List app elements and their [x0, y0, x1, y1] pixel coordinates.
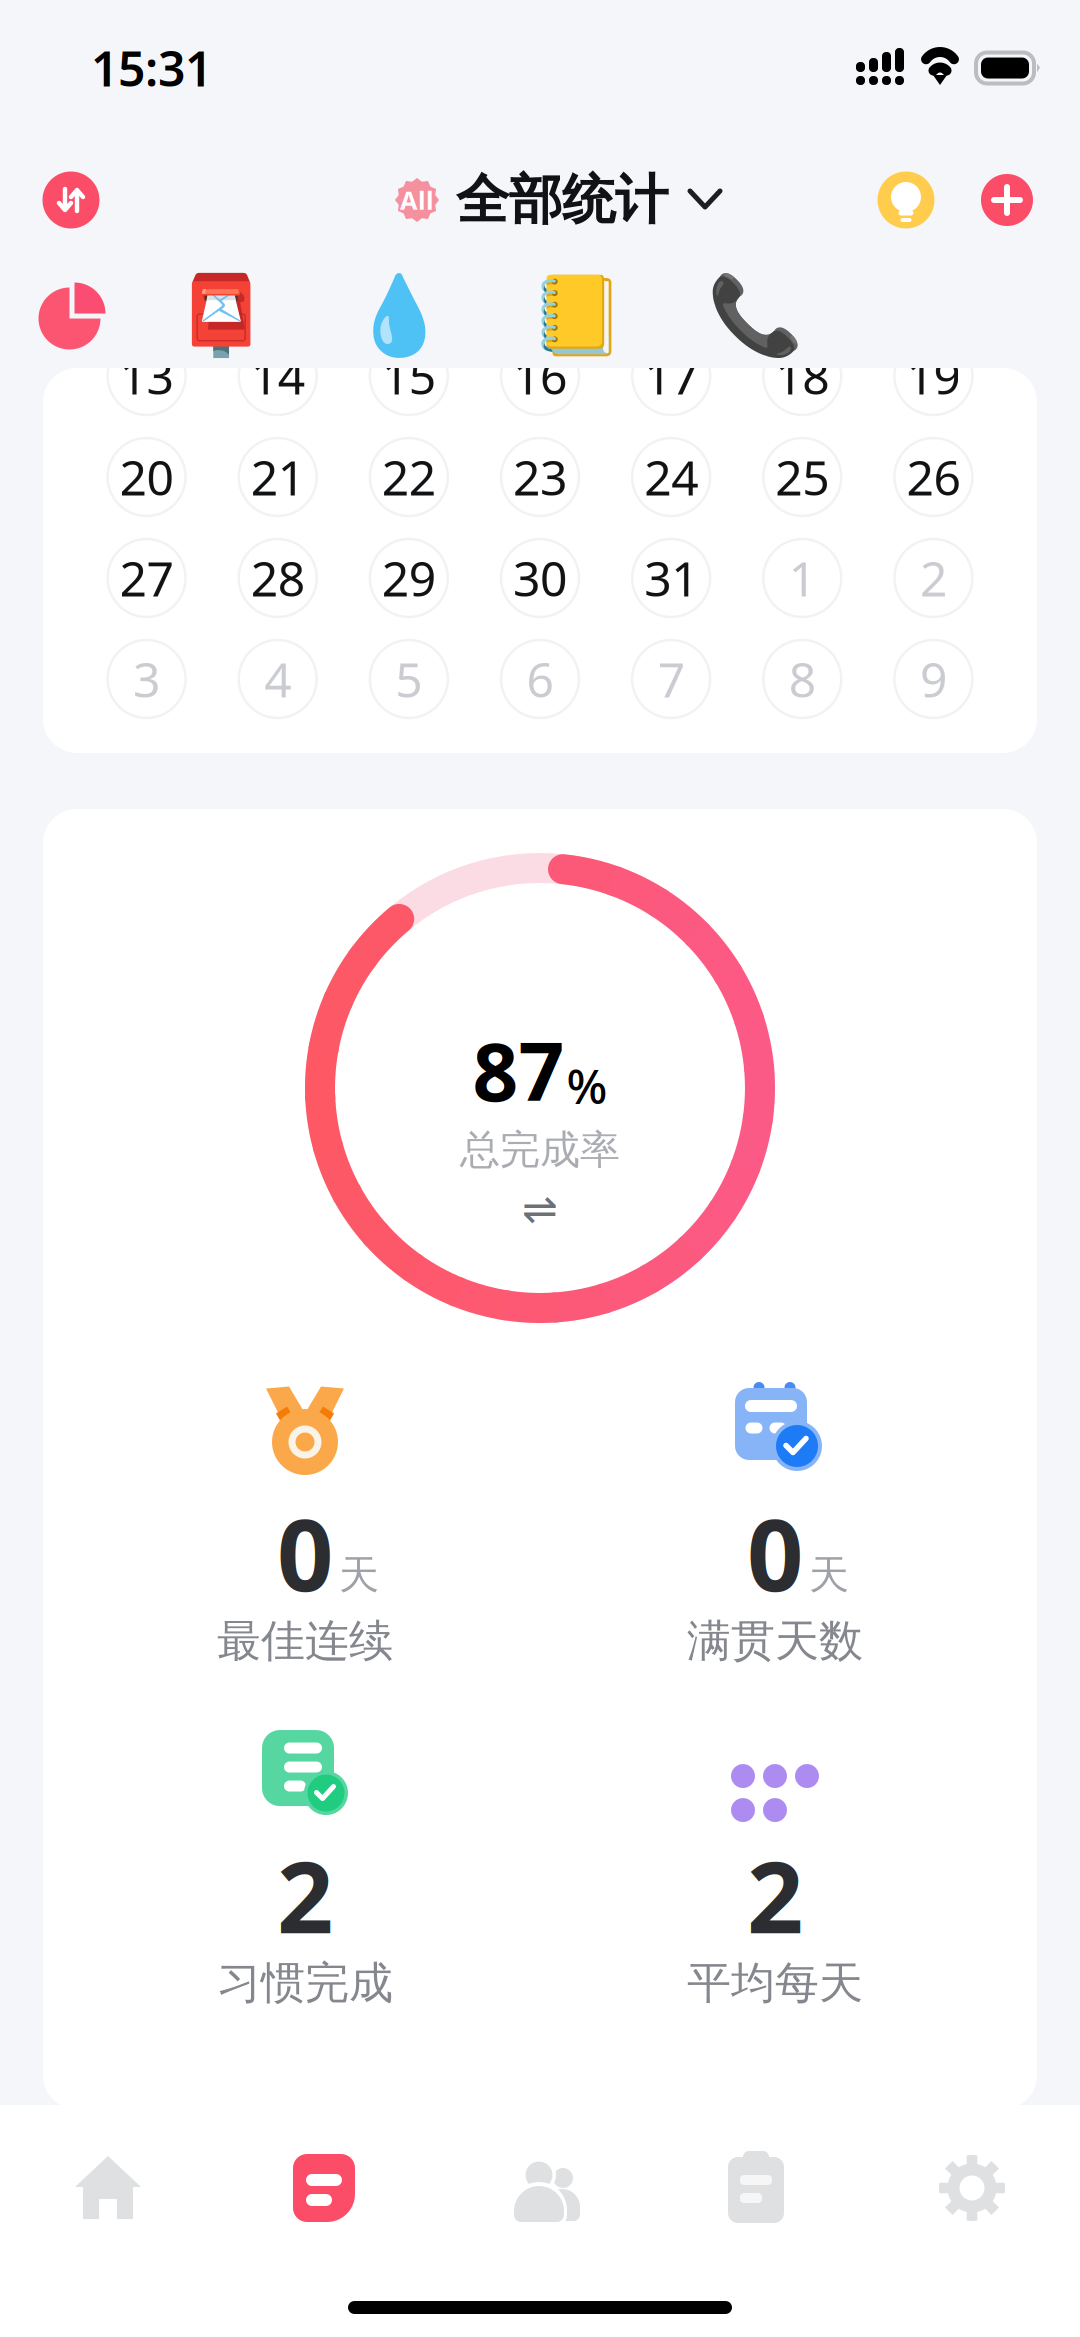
staticText: 4	[264, 647, 291, 711]
staticText: 最佳连续	[217, 1614, 393, 1668]
staticText: 24	[644, 445, 698, 509]
staticText: 19	[906, 344, 960, 408]
button[interactable]: Notebook habit	[488, 268, 666, 364]
staticText: 天	[339, 1550, 379, 1599]
staticText: 2	[747, 1829, 803, 1960]
staticText: 27	[120, 546, 174, 610]
staticText: 习惯完成	[217, 1956, 393, 2010]
staticText: 15	[382, 344, 436, 408]
staticText: 17	[644, 344, 698, 408]
button[interactable]: Water habit	[310, 268, 488, 364]
button[interactable]: Sort	[35, 164, 107, 236]
staticText: 6	[526, 647, 553, 711]
staticText: ⇌	[522, 1184, 558, 1233]
staticText: 0	[277, 1487, 333, 1618]
staticText: 全部统计	[456, 167, 668, 233]
staticText: 平均每天	[687, 1956, 863, 2010]
staticText: 9	[920, 647, 947, 711]
staticText: 87	[472, 1017, 564, 1123]
staticText: 29	[382, 546, 436, 610]
staticText: %	[566, 1054, 607, 1117]
staticText: 💧	[351, 272, 447, 360]
staticText: 30	[513, 546, 567, 610]
staticText: 15:31	[91, 36, 212, 100]
button[interactable]: Add	[971, 164, 1043, 236]
button[interactable]: All	[394, 167, 722, 233]
button[interactable]: Settings	[864, 2153, 1080, 2223]
button[interactable]: Call habit	[666, 268, 844, 364]
button[interactable]: All habits	[12, 268, 132, 364]
staticText: 26	[906, 445, 960, 509]
staticText: 22	[382, 445, 436, 509]
staticText: 13	[120, 344, 174, 408]
staticText: 18	[775, 344, 829, 408]
staticText: 5	[395, 647, 422, 711]
staticText: 0	[747, 1487, 803, 1618]
button[interactable]: Tips	[870, 164, 942, 236]
staticText: 1	[789, 546, 816, 610]
staticText: 满贯天数	[687, 1614, 863, 1668]
staticText: 23	[513, 445, 567, 509]
staticText: 16	[513, 344, 567, 408]
staticText: 📞	[707, 272, 803, 360]
staticText: 2	[277, 1829, 333, 1960]
staticText: 14	[251, 344, 305, 408]
staticText: 📮	[173, 272, 269, 360]
button[interactable]: Statistics	[216, 2154, 432, 2222]
staticText: 31	[644, 546, 698, 610]
staticText: 总完成率	[460, 1125, 620, 1174]
staticText: 20	[120, 445, 174, 509]
button[interactable]: Notes	[648, 2150, 864, 2226]
staticText: 21	[251, 445, 305, 509]
staticText: 28	[251, 546, 305, 610]
button[interactable]: Friends	[432, 2153, 648, 2223]
button[interactable]: Mail habit	[132, 268, 310, 364]
staticText: 天	[809, 1550, 849, 1599]
staticText: 8	[789, 647, 816, 711]
staticText: 2	[920, 546, 947, 610]
staticText: All	[400, 183, 434, 217]
button[interactable]: Home	[0, 2153, 216, 2223]
staticText: 3	[133, 647, 160, 711]
staticText: 📒	[529, 272, 625, 360]
staticText: 7	[658, 647, 685, 711]
staticText: 25	[775, 445, 829, 509]
